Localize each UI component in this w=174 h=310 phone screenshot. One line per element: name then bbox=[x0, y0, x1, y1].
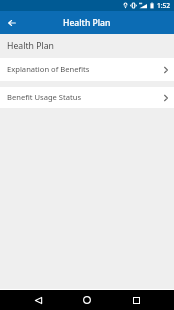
staticText: Health Plan bbox=[7, 40, 54, 52]
staticText: Benefit Usage Status bbox=[7, 92, 82, 102]
button[interactable]: Navigate up bbox=[0, 11, 24, 34]
button[interactable]: Recent apps bbox=[126, 290, 146, 310]
button[interactable]: Benefit Usage Status bbox=[0, 87, 174, 108]
button[interactable]: Back bbox=[28, 290, 48, 310]
button[interactable]: Explanation of Benefits bbox=[0, 58, 174, 81]
staticText: Explanation of Benefits bbox=[7, 64, 90, 74]
button[interactable]: Home bbox=[77, 290, 97, 310]
staticText: 1:52 bbox=[157, 1, 171, 10]
staticText: Health Plan bbox=[63, 17, 111, 29]
